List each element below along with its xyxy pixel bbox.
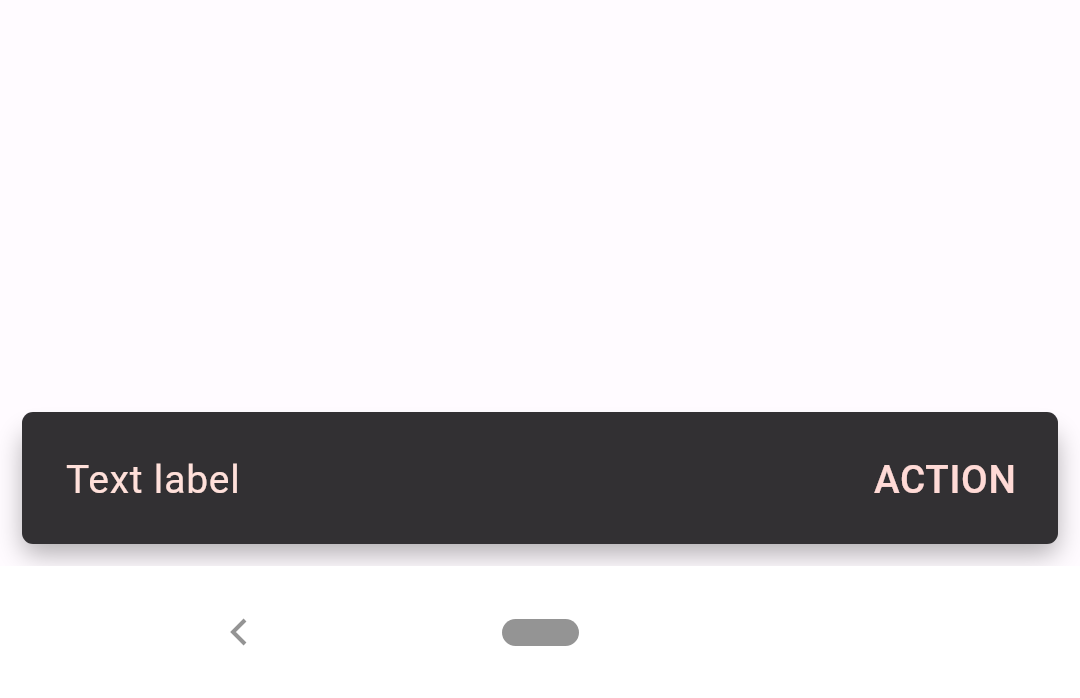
button[interactable]: Back — [204, 597, 274, 667]
staticText: Text label — [66, 457, 852, 503]
staticText: ACTION — [874, 457, 1017, 502]
button[interactable]: ACTION — [852, 442, 1039, 514]
button[interactable]: Home — [502, 619, 579, 646]
